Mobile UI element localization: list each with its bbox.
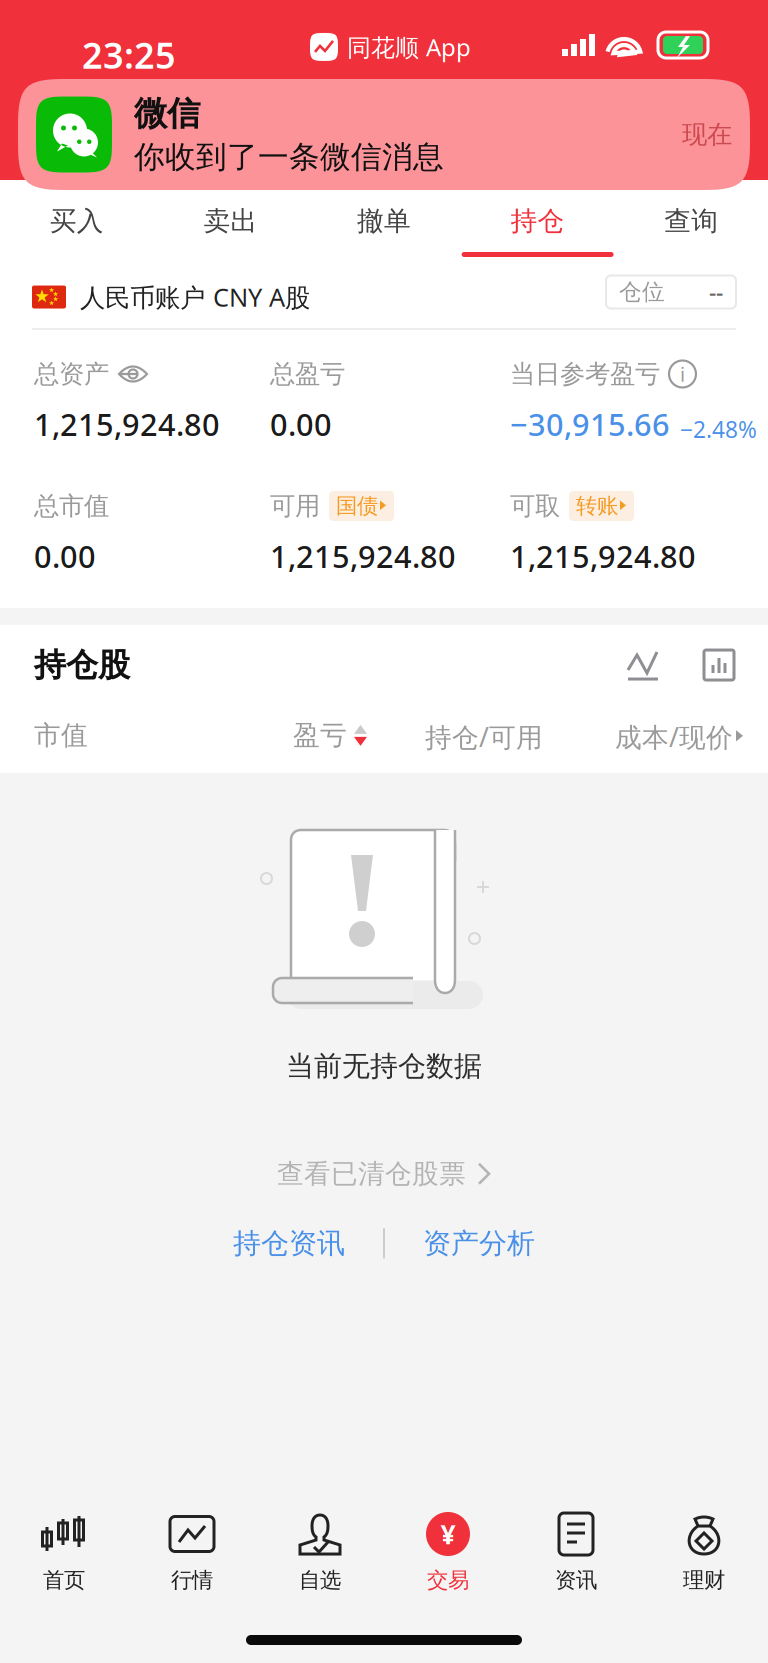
staticText: 转账 (576, 493, 618, 519)
staticText: 同花顺 App (347, 31, 471, 63)
button[interactable]: 行情 (128, 1497, 256, 1615)
staticText: 总资产 (34, 358, 109, 389)
staticText: 资产分析 (423, 1226, 535, 1260)
staticText: 0.00 (270, 404, 332, 444)
staticText: 持仓 (511, 205, 565, 237)
staticText: 国债 (336, 493, 378, 519)
staticText: 现在 (682, 119, 732, 150)
button[interactable]: 柱状图 (697, 643, 741, 687)
staticText: 成本/现价 (615, 719, 733, 754)
button[interactable]: 买入 (0, 190, 154, 262)
button[interactable]: 首页 (0, 1497, 128, 1615)
staticText: ¥ (440, 1516, 455, 1552)
button[interactable]: 自选 (256, 1497, 384, 1615)
button[interactable]: 理财 (640, 1497, 768, 1615)
staticText: 总市值 (34, 490, 109, 521)
staticText: 交易 (427, 1567, 469, 1593)
staticText: 市值 (34, 719, 88, 752)
staticText: 查询 (664, 205, 718, 237)
button[interactable]: 持仓资讯 (217, 1218, 361, 1268)
staticText: 持仓资讯 (233, 1226, 345, 1260)
staticText: −2.48% (680, 414, 757, 444)
staticText: 盈亏 (293, 719, 347, 752)
button[interactable]: 资产分析 (407, 1218, 551, 1268)
staticText: −30,915.66 (510, 404, 670, 444)
staticText: -- (709, 277, 723, 307)
button[interactable]: 资讯 (512, 1497, 640, 1615)
button[interactable]: ¥ (384, 1497, 512, 1615)
button[interactable]: 卖出 (154, 190, 307, 262)
staticText: 撤单 (357, 205, 411, 237)
staticText: 可取 (510, 490, 560, 521)
staticText: 总盈亏 (270, 358, 345, 389)
staticText: 自选 (299, 1567, 341, 1593)
staticText: 23:25 (82, 31, 176, 79)
staticText: 0.00 (34, 536, 96, 576)
staticText: i (680, 361, 685, 387)
staticText: 1,215,924.80 (510, 536, 696, 576)
staticText: 资讯 (555, 1567, 597, 1593)
button[interactable]: 查询 (614, 190, 768, 262)
button[interactable]: 微信 (18, 79, 750, 190)
staticText: 仓位 (619, 278, 665, 306)
staticText: 持仓股 (34, 645, 130, 685)
button[interactable]: 仓位 (606, 275, 736, 308)
staticText: 当前无持仓数据 (286, 1049, 482, 1083)
staticText: 首页 (43, 1567, 85, 1593)
staticText: 1,215,924.80 (270, 536, 456, 576)
button[interactable]: 查看已清仓股票 (257, 1147, 511, 1200)
staticText: 理财 (683, 1567, 725, 1593)
button[interactable]: 撤单 (307, 190, 461, 262)
staticText: 可用 (270, 490, 320, 521)
button[interactable]: 走势图 (621, 643, 665, 687)
staticText: 你收到了一条微信消息 (134, 138, 444, 176)
staticText: 卖出 (203, 205, 257, 237)
staticText: 人民币账户 CNY A股 (80, 280, 310, 314)
staticText: 微信 (134, 93, 200, 134)
staticText: 当日参考盈亏 (510, 358, 660, 389)
button[interactable]: 持仓 (461, 190, 614, 262)
staticText: 持仓/可用 (425, 719, 543, 754)
staticText: 查看已清仓股票 (277, 1157, 466, 1190)
staticText: 1,215,924.80 (34, 404, 220, 444)
staticText: 行情 (171, 1567, 213, 1593)
staticText: 买入 (50, 205, 104, 237)
